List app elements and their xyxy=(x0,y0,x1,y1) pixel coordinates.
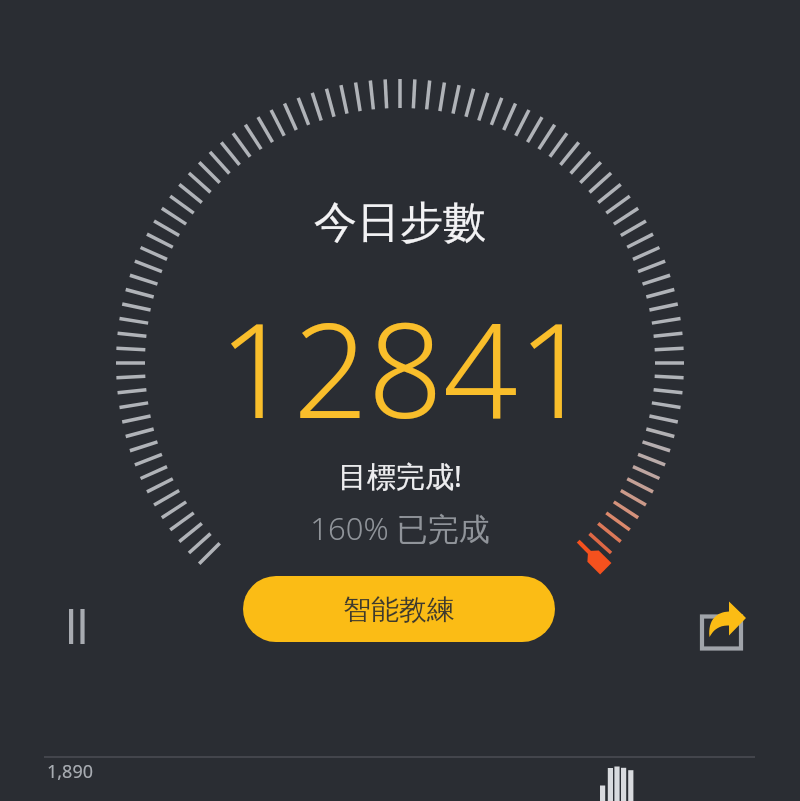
button[interactable]: Pause xyxy=(53,594,101,642)
staticText: 今日步數 xyxy=(314,196,486,250)
staticText: 12841 xyxy=(218,278,593,456)
staticText: 目標完成! xyxy=(338,456,462,496)
button[interactable]: Share xyxy=(693,593,757,657)
button[interactable]: 1,890 xyxy=(44,758,755,801)
button[interactable]: Activity chart xyxy=(592,760,642,801)
button[interactable]: 智能教練 xyxy=(243,576,555,642)
staticText: 160% 已完成 xyxy=(310,507,490,549)
staticText: 智能教練 xyxy=(343,592,455,627)
staticText: 1,890 xyxy=(47,759,94,784)
